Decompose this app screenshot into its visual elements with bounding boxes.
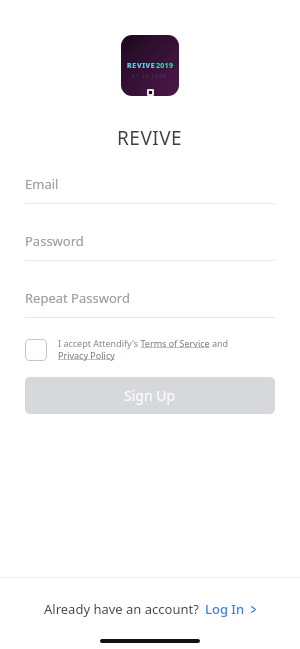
staticText: 2019 bbox=[156, 61, 174, 71]
button[interactable]: I accept Attendify's Terms of Service an… bbox=[58, 337, 229, 361]
button[interactable]: Already have an account? bbox=[36, 596, 265, 622]
button[interactable]: Password bbox=[25, 232, 275, 261]
button[interactable]: Sign Up bbox=[25, 377, 275, 414]
staticText: Log In bbox=[205, 600, 245, 618]
staticText: Repeat Password bbox=[25, 289, 130, 307]
staticText: Already have an account? bbox=[44, 600, 199, 618]
button[interactable]: Accept terms checkbox bbox=[25, 339, 47, 361]
staticText: 21-22 JUNE bbox=[132, 73, 168, 79]
staticText: REVIVE bbox=[117, 125, 183, 151]
button[interactable]: Email bbox=[25, 175, 275, 204]
staticText: REVIVE bbox=[127, 61, 156, 71]
staticText: Sign Up bbox=[124, 386, 176, 405]
button[interactable]: Repeat Password bbox=[25, 289, 275, 318]
staticText: Privacy Policy bbox=[58, 349, 115, 361]
staticText: Email bbox=[25, 175, 59, 193]
staticText: I accept Attendify's Terms of Service an… bbox=[58, 337, 229, 349]
staticText: Password bbox=[25, 232, 84, 250]
